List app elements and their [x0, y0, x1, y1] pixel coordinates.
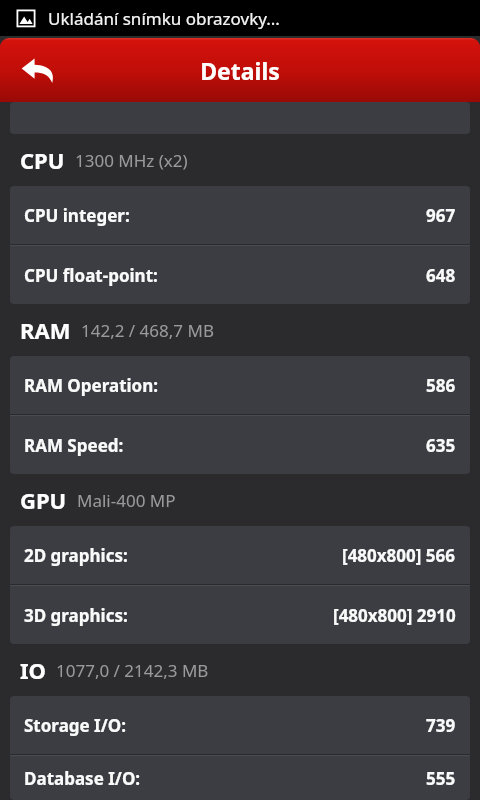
button[interactable]: CPU integer: [10, 186, 470, 244]
staticText: Details [200, 55, 280, 86]
staticText: 635 [426, 434, 456, 457]
button[interactable]: 3D graphics: [10, 586, 470, 644]
staticText: Ukládání snímku obrazovky... [48, 7, 280, 30]
button[interactable]: Storage I/O: [10, 696, 470, 754]
button[interactable]: RAM Speed: [10, 416, 470, 474]
button[interactable]: Database I/O: [10, 756, 470, 800]
staticText: Storage I/O: [24, 714, 127, 737]
staticText: 1300 MHz (x2) [75, 149, 188, 172]
staticText: CPU [20, 145, 65, 175]
staticText: 739 [426, 714, 456, 737]
staticText: IO [20, 655, 46, 685]
button[interactable]: RAM Operation: [10, 356, 470, 414]
staticText: Mali-400 MP [77, 489, 176, 512]
staticText: CPU integer: [24, 204, 130, 227]
staticText: 2D graphics: [24, 544, 128, 567]
staticText: RAM Operation: [24, 374, 159, 397]
staticText: 3D graphics: [24, 604, 128, 627]
staticText: 967 [426, 204, 456, 227]
staticText: [480x800] 566 [342, 544, 456, 567]
staticText: 586 [426, 374, 456, 397]
staticText: Database I/O: [24, 767, 141, 790]
staticText: 1077,0 / 2142,3 MB [56, 659, 209, 682]
button[interactable]: CPU float-point: [10, 246, 470, 304]
staticText: 555 [426, 767, 456, 790]
staticText: 648 [426, 264, 456, 287]
staticText: 142,2 / 468,7 MB [81, 319, 214, 342]
button[interactable]: Back [10, 42, 66, 98]
button[interactable]: 2D graphics: [10, 526, 470, 584]
staticText: RAM Speed: [24, 434, 124, 457]
staticText: CPU float-point: [24, 264, 158, 287]
staticText: [480x800] 2910 [333, 604, 456, 627]
staticText: RAM [20, 315, 71, 345]
staticText: GPU [20, 485, 67, 515]
